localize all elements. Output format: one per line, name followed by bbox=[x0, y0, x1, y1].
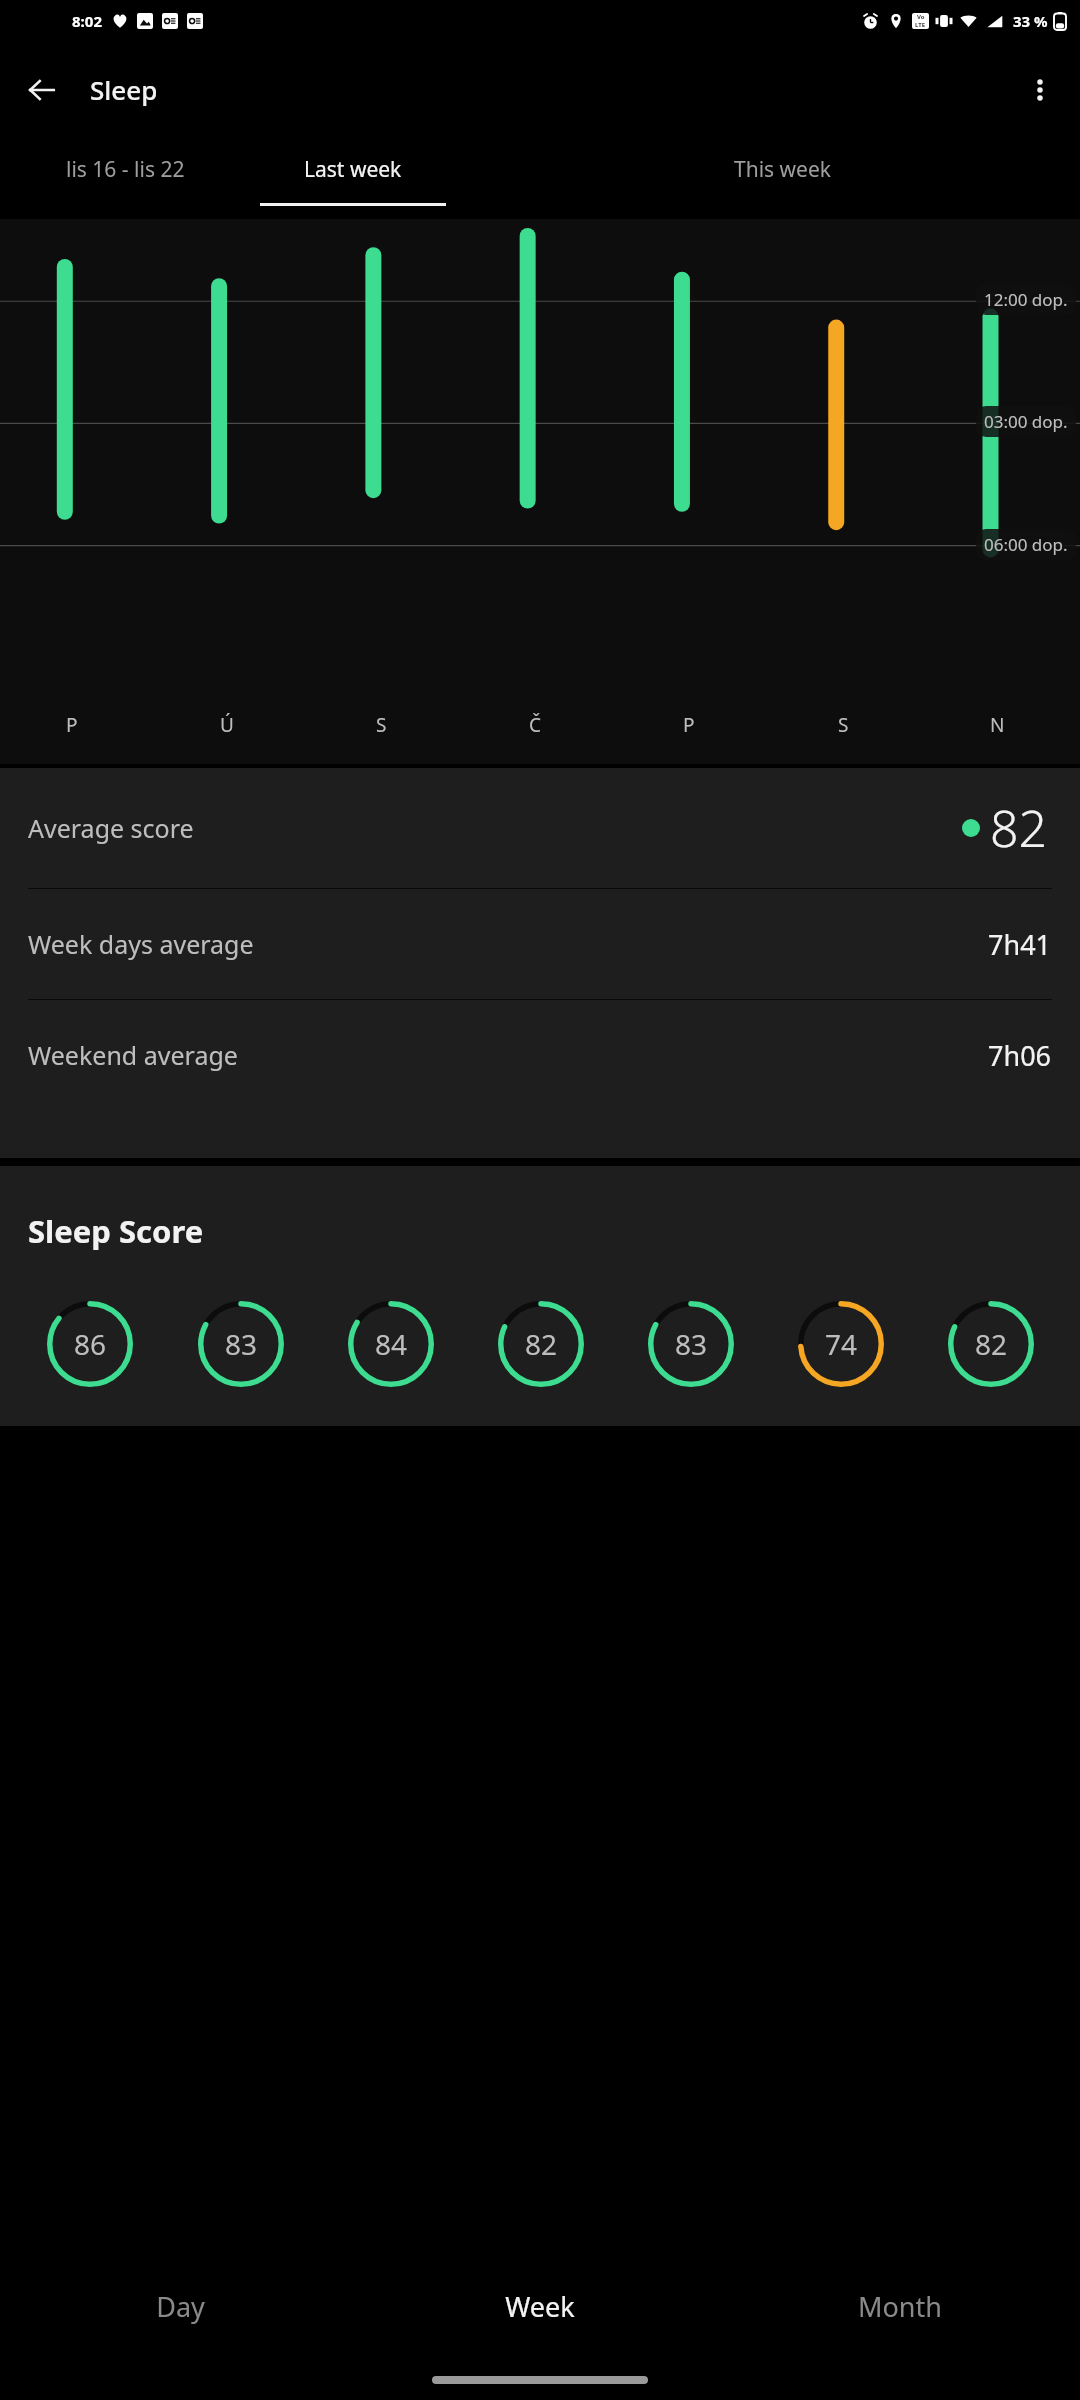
staticText: 74 bbox=[825, 1325, 858, 1363]
staticText: Average score bbox=[28, 811, 194, 845]
button[interactable]: 84 bbox=[316, 1296, 466, 1392]
staticText: 33 % bbox=[1013, 11, 1048, 31]
staticText: Weekend average bbox=[28, 1038, 238, 1072]
staticText: 82 bbox=[990, 794, 1048, 862]
button[interactable]: Week days average bbox=[28, 889, 1052, 999]
staticText: Last week bbox=[304, 155, 402, 184]
button[interactable]: lis 16 - lis 22 bbox=[0, 137, 250, 219]
staticText: 82 bbox=[525, 1325, 558, 1363]
staticText: N bbox=[990, 712, 1005, 738]
staticText: Sleep Score bbox=[28, 1210, 204, 1252]
staticText: P bbox=[683, 712, 695, 738]
staticText: Č bbox=[529, 712, 542, 738]
staticText: Sleep bbox=[90, 72, 158, 107]
staticText: 84 bbox=[375, 1325, 408, 1363]
staticText: Week bbox=[505, 2288, 575, 2325]
button[interactable]: Day bbox=[0, 2252, 360, 2360]
staticText: S bbox=[376, 712, 387, 738]
staticText: Week days average bbox=[28, 927, 254, 961]
button[interactable]: Week bbox=[360, 2252, 720, 2360]
staticText: 7h06 bbox=[988, 1037, 1052, 1074]
staticText: 12:00 dop. bbox=[984, 288, 1068, 311]
staticText: lis 16 - lis 22 bbox=[66, 155, 185, 184]
button[interactable]: This week bbox=[456, 137, 1080, 219]
staticText: This week bbox=[734, 155, 831, 184]
button[interactable]: 82 bbox=[916, 1296, 1066, 1392]
button[interactable]: Weekend average bbox=[28, 1000, 1052, 1110]
staticText: P bbox=[66, 712, 78, 738]
button[interactable]: Average score bbox=[28, 768, 1052, 888]
staticText: Month bbox=[858, 2288, 942, 2325]
button[interactable]: 83 bbox=[616, 1296, 766, 1392]
button[interactable]: Back bbox=[14, 62, 70, 118]
button[interactable]: 83 bbox=[165, 1296, 316, 1392]
staticText: LTE bbox=[915, 21, 926, 29]
staticText: 7h41 bbox=[988, 926, 1052, 963]
staticText: 06:00 dop. bbox=[984, 533, 1068, 556]
staticText: 82 bbox=[975, 1325, 1008, 1363]
staticText: 8:02 bbox=[72, 11, 102, 31]
staticText: Day bbox=[156, 2288, 205, 2325]
staticText: Ú bbox=[220, 712, 234, 738]
button[interactable]: Last week bbox=[250, 137, 456, 219]
button[interactable]: 74 bbox=[766, 1296, 916, 1392]
staticText: S bbox=[838, 712, 849, 738]
staticText: 03:00 dop. bbox=[984, 410, 1068, 433]
staticText: 86 bbox=[74, 1325, 107, 1363]
button[interactable]: 82 bbox=[466, 1296, 616, 1392]
staticText: 83 bbox=[675, 1325, 708, 1363]
button[interactable]: More options bbox=[1012, 62, 1068, 118]
button[interactable]: Month bbox=[720, 2252, 1080, 2360]
staticText: 83 bbox=[225, 1325, 258, 1363]
button[interactable]: 86 bbox=[14, 1296, 165, 1392]
staticText: Vo bbox=[917, 13, 925, 21]
